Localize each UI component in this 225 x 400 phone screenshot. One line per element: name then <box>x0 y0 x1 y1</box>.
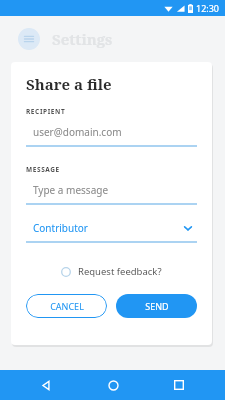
button[interactable]: CANCEL <box>26 294 107 318</box>
button[interactable]: Settings <box>16 26 115 52</box>
staticText: Request feedback? <box>78 265 162 278</box>
button[interactable]: Request feedback? <box>57 262 166 281</box>
staticText: CANCEL <box>50 300 84 312</box>
staticText: RECIPIENT <box>26 107 66 116</box>
button[interactable]: Back <box>26 370 66 400</box>
staticText: Share a file <box>26 74 112 94</box>
staticText: Contributor <box>33 221 88 235</box>
button[interactable]: Recents <box>159 370 199 400</box>
staticText: SEND <box>145 300 169 312</box>
staticText: Type a message <box>33 183 109 197</box>
button[interactable]: SEND <box>116 294 197 318</box>
staticText: MESSAGE <box>26 165 60 174</box>
button[interactable]: Home <box>93 370 133 400</box>
staticText: Settings <box>52 29 113 49</box>
button[interactable]: Contributor <box>26 221 197 243</box>
staticText: user@domain.com <box>33 125 122 139</box>
staticText: 12:30 <box>196 2 220 14</box>
button[interactable]: Type a message <box>26 183 197 205</box>
button[interactable]: user@domain.com <box>26 125 197 147</box>
